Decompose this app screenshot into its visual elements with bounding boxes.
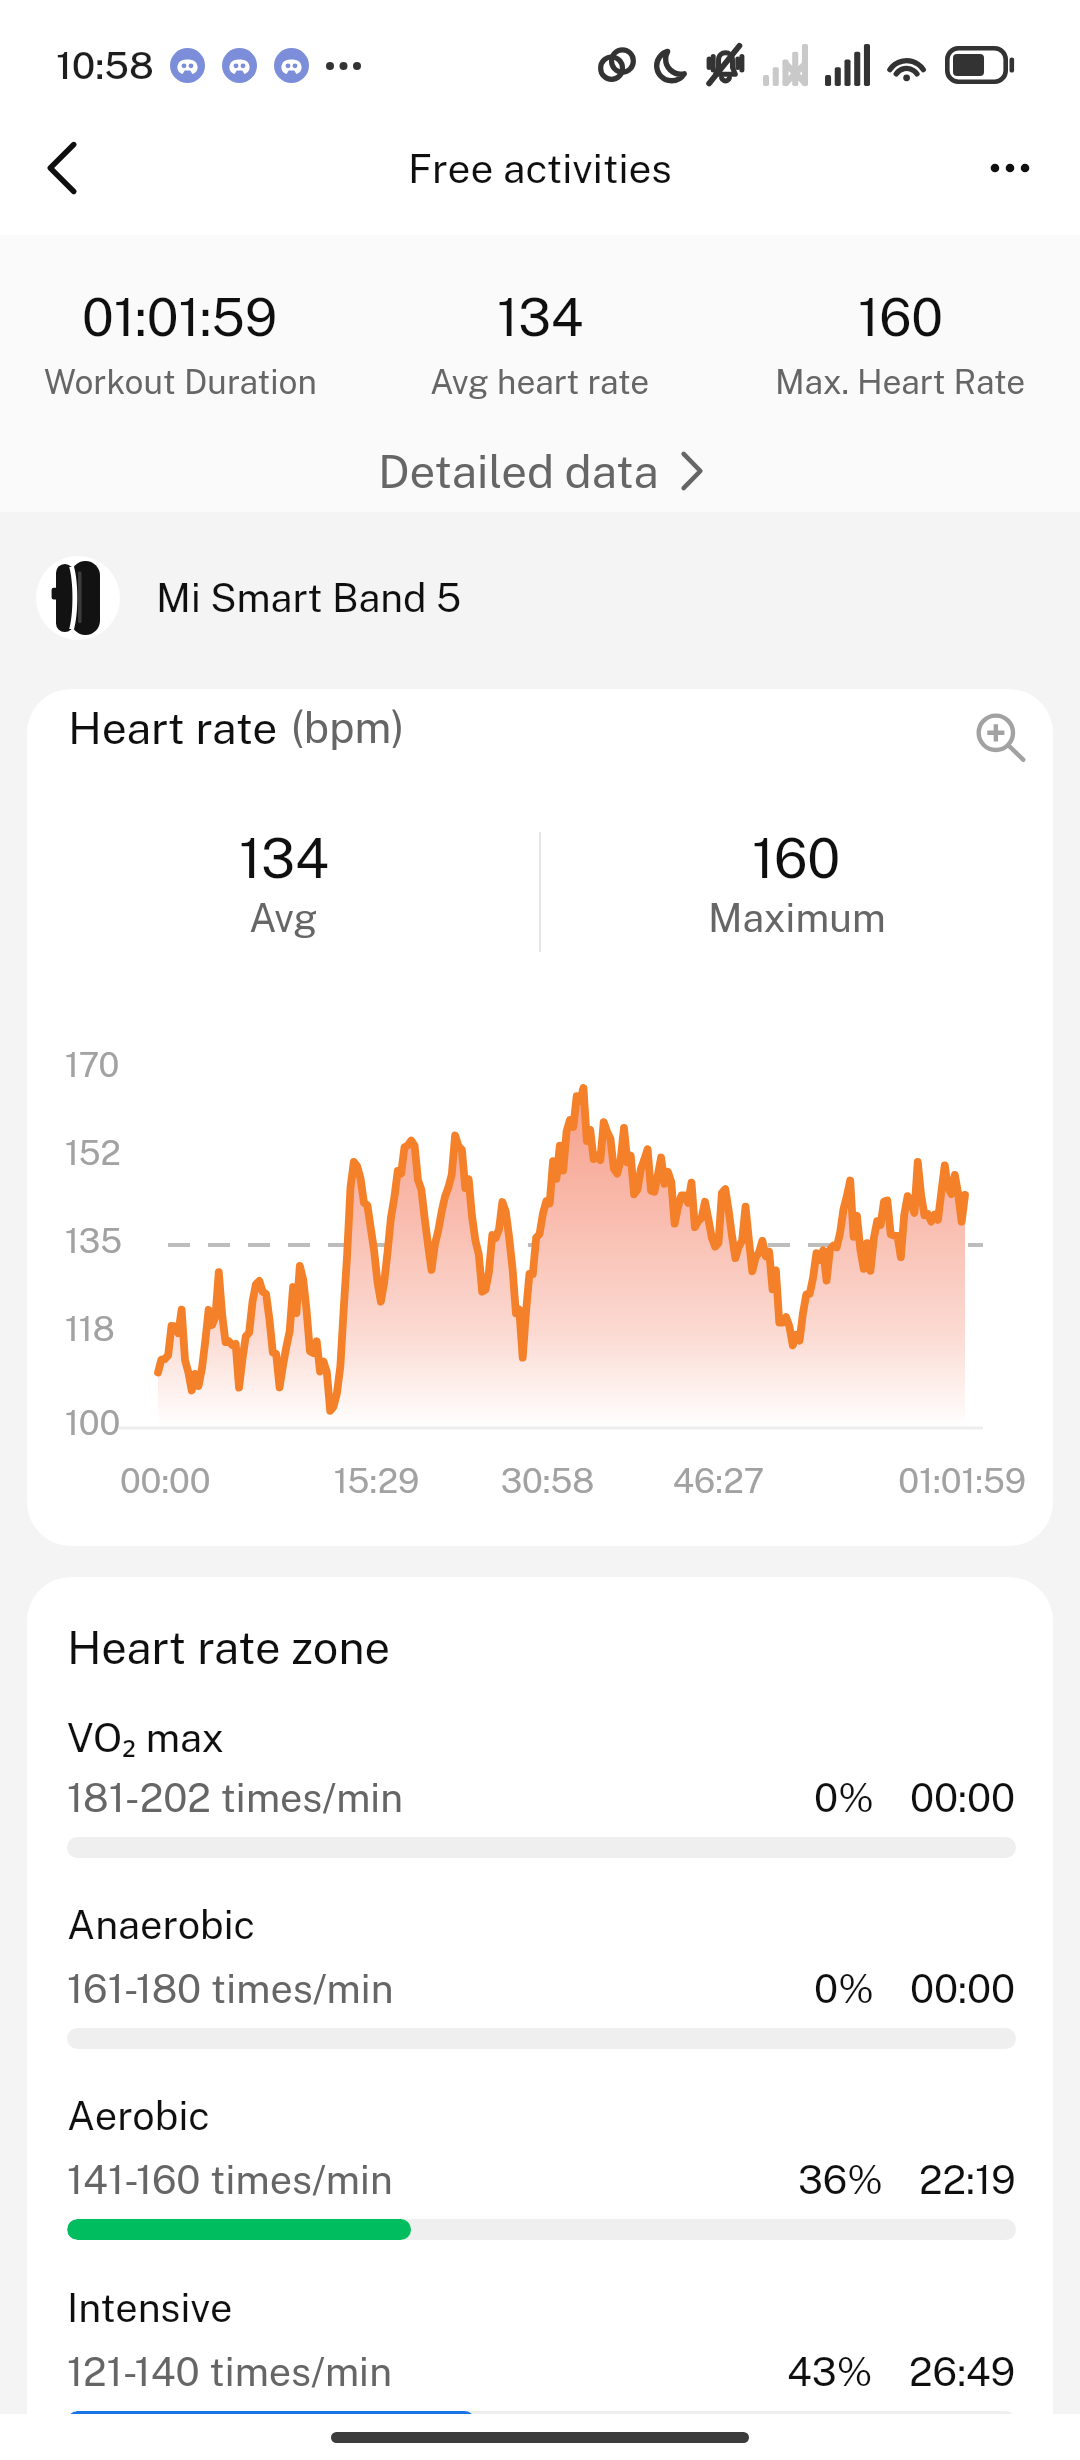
button[interactable]: Back bbox=[7, 113, 117, 223]
staticText: 100 bbox=[65, 1403, 121, 1443]
staticText: Aerobic bbox=[67, 2092, 210, 2139]
staticText: 141-160 times/min bbox=[67, 2156, 393, 2202]
staticText: 01:01:59 bbox=[804, 1461, 1026, 1501]
staticText: Mi Smart Band 5 bbox=[156, 575, 462, 621]
staticText: 152 bbox=[65, 1133, 121, 1173]
staticText: 26:49 bbox=[909, 2348, 1016, 2394]
staticText: Free activities bbox=[408, 145, 672, 193]
button[interactable]: More options bbox=[955, 113, 1065, 223]
staticText: 00:00 bbox=[910, 1965, 1016, 2011]
staticText: 134 bbox=[497, 287, 584, 348]
staticText: 36% bbox=[798, 2156, 883, 2202]
staticText: Intensive bbox=[67, 2284, 233, 2331]
staticText: 118 bbox=[65, 1309, 115, 1349]
staticText: 0% bbox=[814, 1965, 874, 2011]
staticText: 15:29 bbox=[291, 1461, 462, 1501]
button[interactable]: Detailed data bbox=[0, 438, 1080, 504]
staticText: 30:58 bbox=[462, 1461, 633, 1501]
button[interactable]: Mi Smart Band 5 bbox=[36, 556, 1080, 640]
staticText: Heart rate zone bbox=[67, 1621, 391, 1674]
staticText: 161-180 times/min bbox=[67, 1965, 394, 2011]
staticText: 135 bbox=[65, 1221, 123, 1261]
staticText: Workout Duration bbox=[44, 362, 317, 401]
staticText: VO₂ max bbox=[67, 1710, 224, 1764]
staticText: 46:27 bbox=[633, 1461, 804, 1501]
staticText: 10:58 bbox=[56, 43, 154, 88]
staticText: (bpm) bbox=[291, 703, 405, 753]
staticText: 121-140 times/min bbox=[67, 2348, 392, 2394]
staticText: 43% bbox=[787, 2348, 873, 2394]
staticText: Maximum bbox=[708, 895, 886, 941]
staticText: 00:00 bbox=[120, 1461, 291, 1501]
staticText: 134 bbox=[239, 827, 329, 890]
staticText: Detailed data bbox=[378, 445, 659, 498]
staticText: 22:19 bbox=[919, 2156, 1016, 2202]
staticText: Avg bbox=[249, 895, 318, 941]
staticText: 181-202 times/min bbox=[67, 1774, 404, 1820]
staticText: Anaerobic bbox=[67, 1901, 256, 1948]
staticText: Heart rate bbox=[68, 702, 278, 754]
staticText: 170 bbox=[65, 1045, 120, 1085]
staticText: 0% bbox=[814, 1774, 874, 1820]
staticText: Max. Heart Rate bbox=[775, 362, 1026, 401]
staticText: 160 bbox=[752, 827, 841, 890]
staticText: 00:00 bbox=[910, 1774, 1016, 1820]
staticText: 01:01:59 bbox=[82, 287, 278, 348]
staticText: 160 bbox=[858, 287, 943, 348]
staticText: Avg heart rate bbox=[430, 362, 650, 401]
button[interactable]: Zoom in bbox=[961, 699, 1039, 777]
